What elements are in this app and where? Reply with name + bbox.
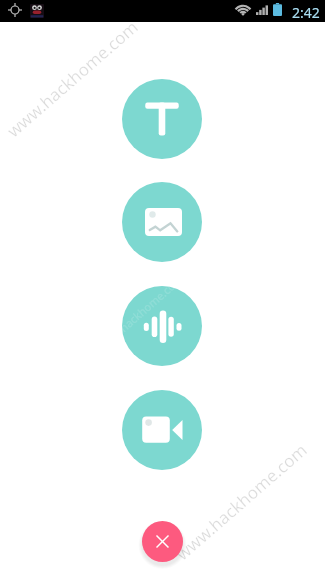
staticText: 2:42 [292, 3, 320, 22]
button[interactable]: Add photo [122, 182, 202, 262]
button[interactable]: Close [142, 521, 183, 562]
staticText: www.hackhome.com [171, 438, 312, 565]
button[interactable]: Add video [122, 390, 202, 470]
button[interactable]: Add audio [122, 286, 202, 366]
staticText: www.hackhome.com [2, 15, 143, 142]
staticText: hackhome.com [122, 286, 186, 335]
button[interactable]: Add text [122, 79, 202, 159]
